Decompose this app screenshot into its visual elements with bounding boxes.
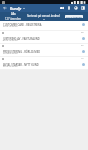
staticText: CUSTOMER CARE - REGISTRERA	[3, 23, 42, 27]
staticText: AVTAL STARTAR - NYTT KUND	[3, 63, 39, 67]
button[interactable]: 38	[0, 31, 88, 44]
button[interactable]: Help	[72, 4, 79, 12]
staticText: Sorterat på senast ändrad	[27, 14, 60, 18]
staticText: 38	[81, 31, 84, 34]
staticText: 12	[81, 57, 84, 60]
staticText: NYTT ÄRENDE	[66, 15, 82, 18]
button[interactable]: Alla	[5, 12, 21, 21]
staticText: JUSTERING AV - FAKTURAUND	[3, 37, 40, 41]
staticText: Kundjr	[10, 6, 22, 11]
button[interactable]: Assigned user	[81, 36, 86, 41]
button[interactable]: CUSTOMER CARE - REGISTRERA	[0, 21, 88, 31]
staticText: 2019-10-08 09	[3, 25, 18, 28]
button[interactable]: More options	[79, 4, 86, 12]
staticText: 2019-10-08 09	[3, 52, 18, 55]
button[interactable]: Back	[0, 4, 10, 12]
button[interactable]: Sorterat på senast ändrad	[27, 14, 60, 20]
button[interactable]: 42	[0, 44, 88, 57]
staticText: 2019-10-08 09	[3, 39, 18, 42]
staticText: PRISJUSTERING - RÖRLIG MED	[3, 50, 41, 54]
button[interactable]: Assigned user	[81, 49, 86, 54]
button[interactable]: Notes	[65, 4, 72, 12]
staticText: Alla	[11, 12, 16, 16]
button[interactable]: NYTT ÄRENDE	[65, 15, 83, 18]
staticText: 42	[81, 44, 84, 47]
button[interactable]: Assigned user	[81, 62, 86, 67]
button[interactable]: Kundjr	[10, 6, 25, 11]
staticText: 2019-10-08 09	[3, 65, 18, 68]
button[interactable]: 12	[0, 57, 88, 70]
button[interactable]: Assigned user	[81, 22, 86, 27]
staticText: 127 ärenden	[5, 17, 21, 21]
button[interactable]: Video	[58, 4, 65, 12]
